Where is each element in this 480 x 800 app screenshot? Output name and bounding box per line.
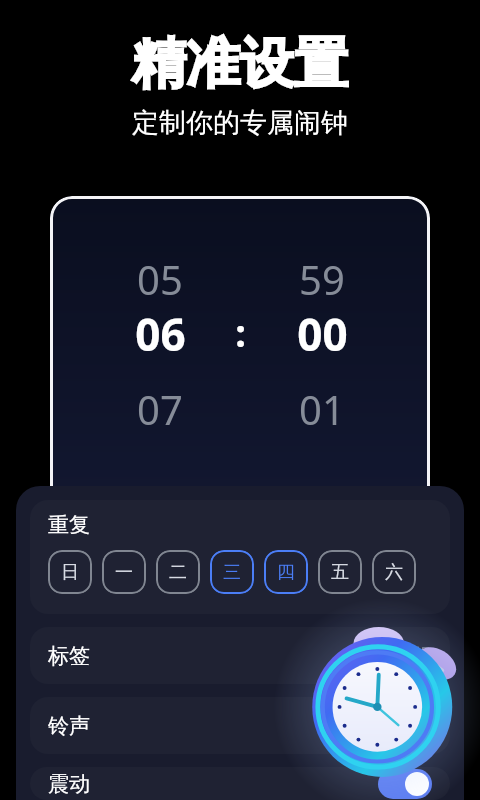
staticText: 重复 — [48, 512, 90, 538]
button[interactable]: 标签 — [30, 627, 450, 684]
staticText: 三 — [223, 561, 241, 584]
staticText: 07 — [137, 382, 183, 434]
staticText: 铃声 — [48, 713, 90, 739]
staticText: 精准设置 — [132, 30, 348, 98]
button[interactable]: 重复 — [30, 500, 450, 614]
staticText: : — [235, 306, 246, 358]
button[interactable]: 05 — [50, 196, 430, 496]
button[interactable]: 六 — [372, 550, 416, 594]
staticText: 震动 — [48, 771, 90, 797]
button[interactable]: 日 — [48, 550, 92, 594]
staticText: 01 — [299, 382, 345, 434]
staticText: 日 — [61, 561, 79, 584]
staticText: 二 — [169, 561, 187, 584]
button[interactable]: 一 — [102, 550, 146, 594]
staticText: 一 — [115, 561, 133, 584]
other: 闹钟插图 — [300, 614, 475, 786]
staticText: 标签 — [48, 643, 90, 669]
staticText: 五 — [331, 561, 349, 584]
staticText: 06 — [135, 304, 186, 356]
button[interactable]: 三 — [210, 550, 254, 594]
staticText: 59 — [299, 252, 345, 304]
button[interactable]: 二 — [156, 550, 200, 594]
staticText: 定制你的专属闹钟 — [132, 106, 348, 140]
button[interactable]: 铃声 — [30, 697, 450, 754]
staticText: 00 — [297, 304, 348, 356]
staticText: 四 — [277, 561, 295, 584]
staticText: 05 — [137, 252, 183, 304]
button[interactable]: 四 — [264, 550, 308, 594]
button[interactable]: 震动开关 — [378, 769, 432, 799]
staticText: 六 — [385, 561, 403, 584]
staticText: 晚安小组 — [360, 644, 432, 667]
button[interactable]: 五 — [318, 550, 362, 594]
button[interactable]: 震动 — [30, 767, 450, 800]
